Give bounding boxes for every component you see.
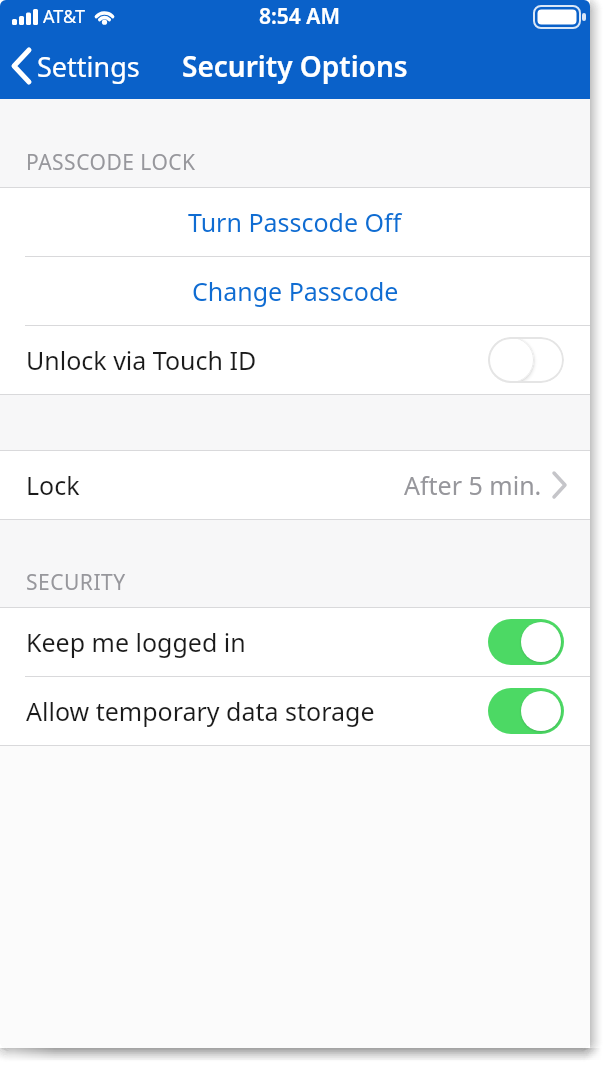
staticText: SECURITY — [26, 568, 126, 597]
button[interactable]: Settings — [10, 47, 140, 85]
staticText: Unlock via Touch ID — [26, 343, 488, 377]
button[interactable] — [488, 337, 564, 383]
staticText: Settings — [37, 48, 140, 85]
staticText: Turn Passcode Off — [188, 205, 402, 239]
staticText: 8:54 AM — [259, 2, 340, 31]
button[interactable]: Change Passcode — [0, 257, 590, 325]
staticText: Allow temporary data storage — [26, 694, 488, 728]
staticText: Security Options — [182, 47, 408, 85]
staticText: After 5 min. — [404, 468, 542, 502]
staticText: Change Passcode — [192, 274, 399, 308]
staticText: AT&T — [43, 4, 85, 29]
button[interactable] — [488, 619, 564, 665]
button[interactable]: Unlock via Touch ID — [0, 326, 590, 394]
button[interactable]: Allow temporary data storage — [0, 677, 590, 745]
staticText: Keep me logged in — [26, 625, 488, 659]
button[interactable]: Turn Passcode Off — [0, 188, 590, 256]
staticText: PASSCODE LOCK — [26, 148, 196, 177]
button[interactable]: Lock — [0, 451, 590, 519]
button[interactable] — [488, 688, 564, 734]
staticText: Lock — [26, 468, 404, 502]
button[interactable]: Keep me logged in — [0, 608, 590, 676]
